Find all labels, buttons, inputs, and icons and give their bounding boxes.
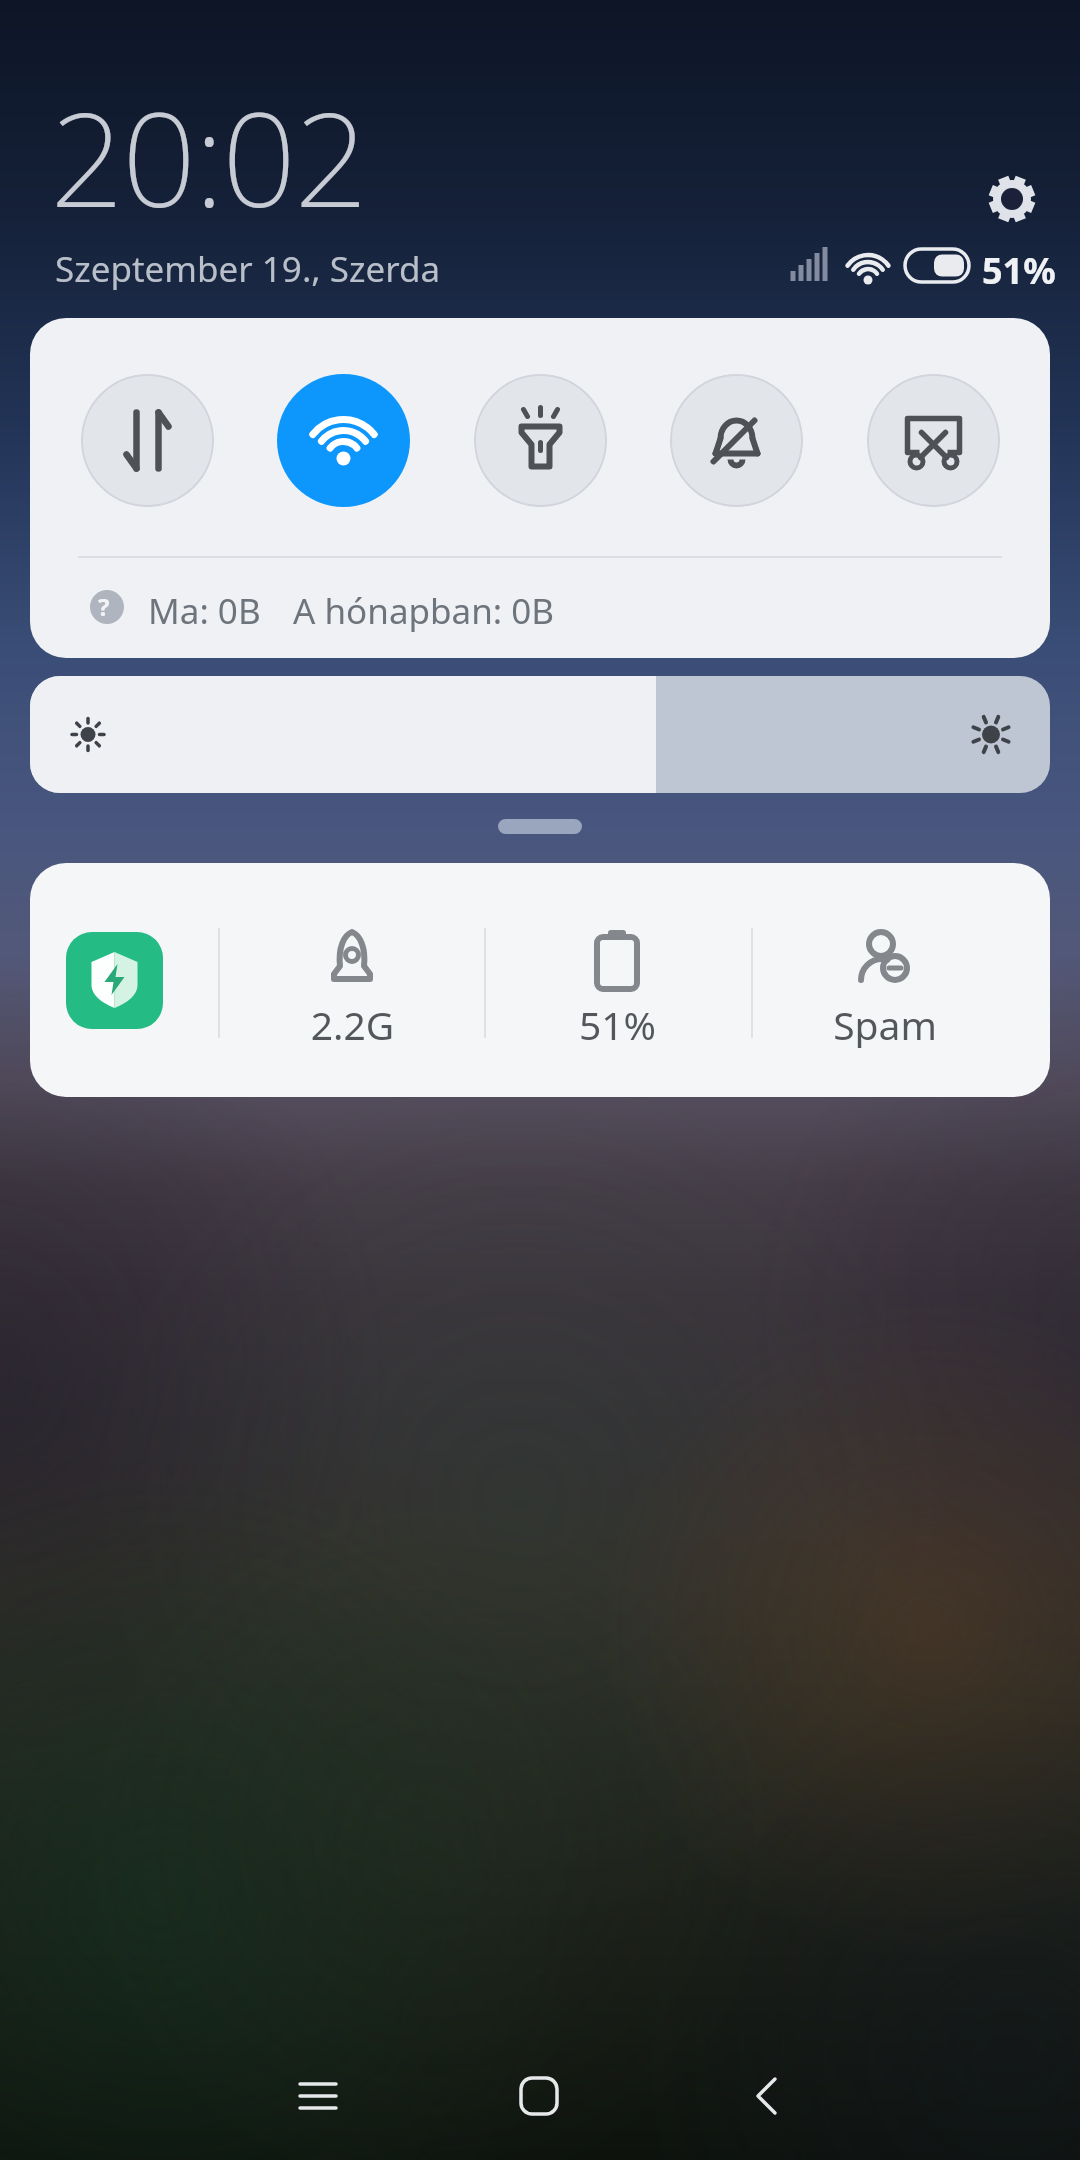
button[interactable] [501,2058,577,2134]
button[interactable] [867,374,1000,507]
button[interactable]: 2.2G [30,863,1050,1097]
button[interactable] [81,374,214,507]
staticText: ? [98,590,110,623]
staticText: 51% [570,998,665,1048]
staticText: 2.2G [305,998,400,1048]
button[interactable]: A hónapban: 0B [293,587,555,635]
staticText: 20:02 [50,68,367,245]
button[interactable] [280,2058,356,2134]
button[interactable] [670,374,803,507]
button[interactable] [474,374,607,507]
button[interactable] [988,174,1036,222]
staticText: Szeptember 19., Szerda [55,245,441,293]
staticText: 51% [982,246,1056,295]
button[interactable] [730,2058,806,2134]
staticText: Spam [830,998,940,1048]
button[interactable] [30,676,1050,793]
button[interactable]: Ma: 0B [148,587,261,635]
button[interactable] [277,374,410,507]
